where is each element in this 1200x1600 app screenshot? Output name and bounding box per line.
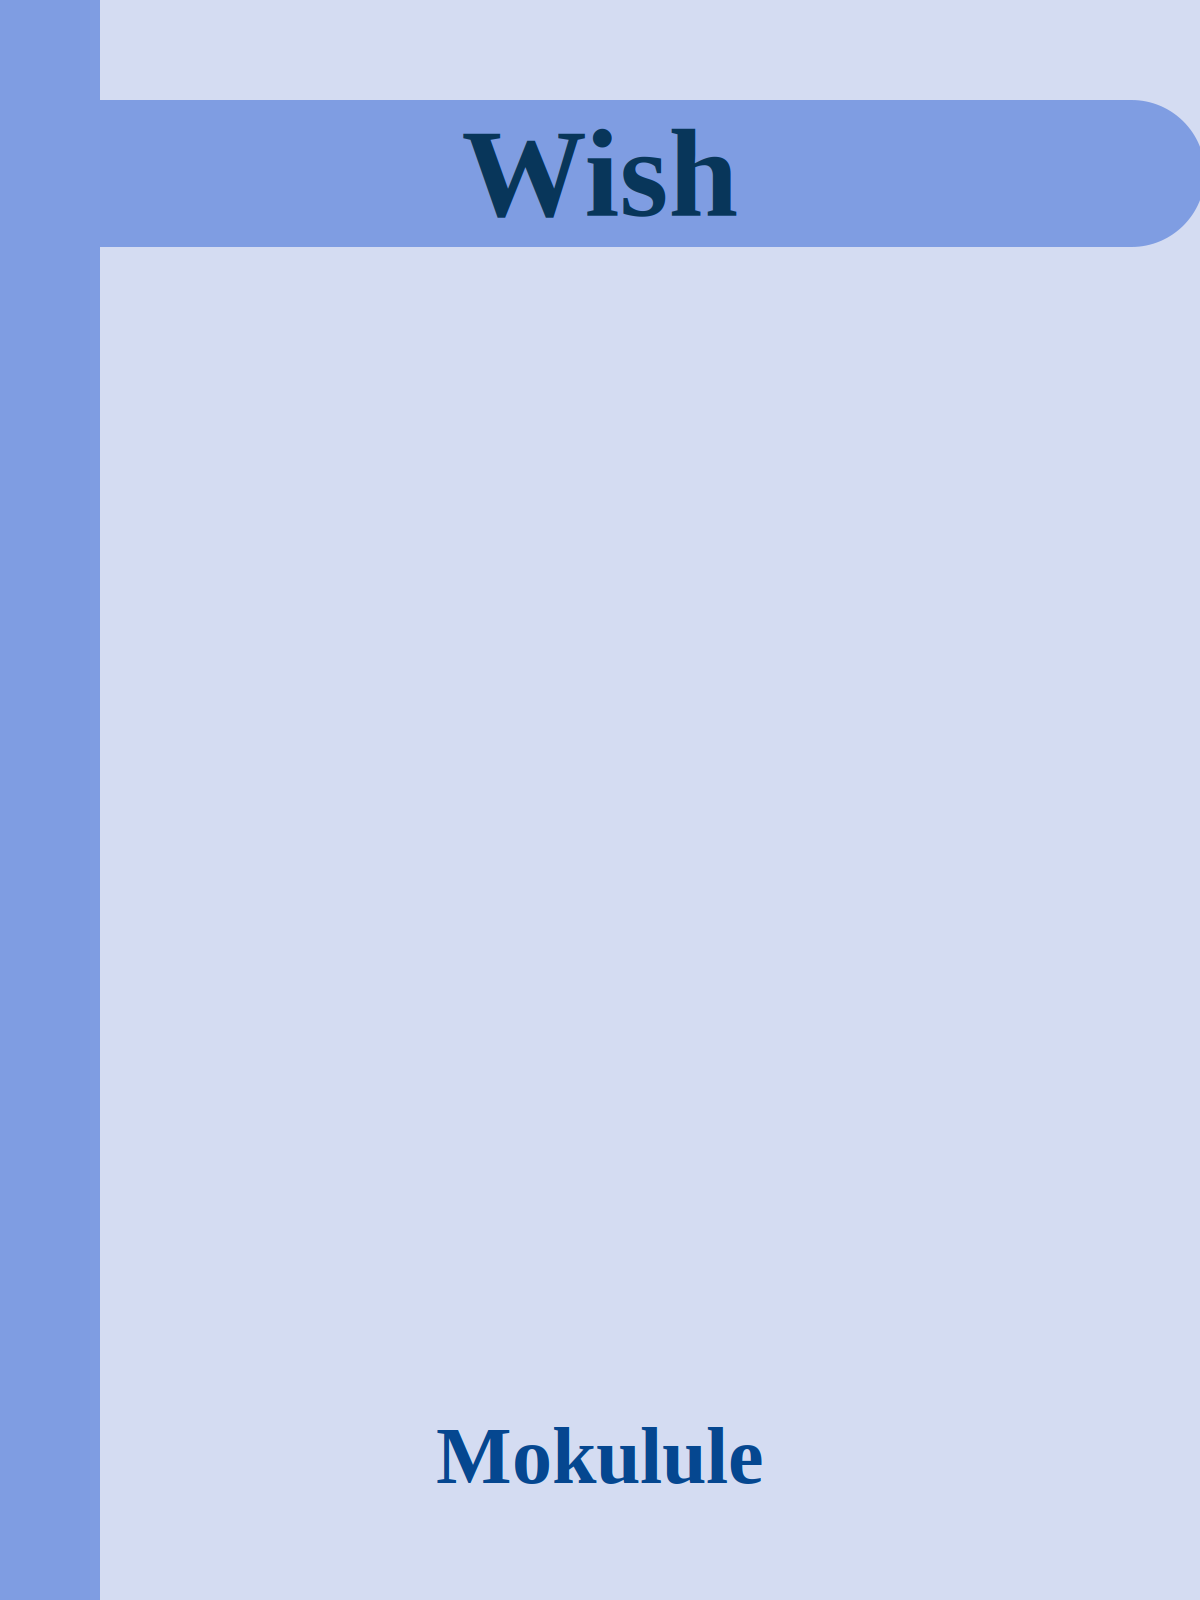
staticText: Mokulule xyxy=(436,1412,764,1500)
staticText: Wish xyxy=(461,104,738,243)
